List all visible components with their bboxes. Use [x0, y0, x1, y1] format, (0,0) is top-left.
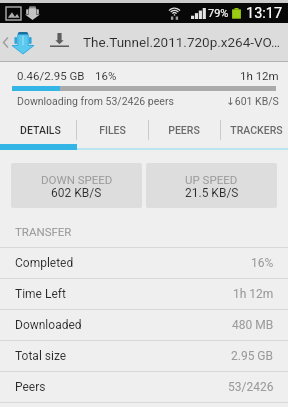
staticText: UP SPEED [185, 173, 238, 186]
button[interactable]: Navigate up [0, 23, 36, 61]
button[interactable]: DOWN SPEED [11, 163, 142, 208]
button[interactable]: Total size [0, 341, 288, 371]
staticText: TRACKERS [230, 124, 283, 136]
staticText: Time Left [15, 287, 66, 301]
button[interactable]: Time Left [0, 279, 288, 309]
staticText: DOWN SPEED [41, 173, 113, 186]
button[interactable]: FILES [76, 115, 148, 150]
staticText: 53/2426 [228, 380, 274, 394]
staticText: 13:17 [246, 5, 283, 22]
staticText: 21.5 KB/S [185, 186, 239, 200]
staticText: 79% [208, 7, 229, 20]
staticText: 602 KB/S [51, 186, 102, 200]
staticText: 16% [95, 69, 117, 82]
staticText: TRANSFER [15, 225, 72, 238]
staticText: Peers [15, 380, 46, 394]
staticText: ↓601 KB/S [226, 95, 279, 107]
button[interactable]: Peers [0, 372, 288, 402]
staticText: Downloading from 53/2426 peers [17, 95, 174, 107]
staticText: FILES [99, 124, 126, 136]
button[interactable]: Download [45, 23, 73, 61]
staticText: The.Tunnel.2011.720p.x264-VO… [83, 34, 281, 50]
staticText: 2.95 GB [231, 349, 274, 363]
staticText: 0.46/2.95 GB [17, 69, 85, 82]
button[interactable]: UP SPEED [146, 163, 277, 208]
staticText: Total size [15, 349, 67, 363]
button[interactable]: DETAILS [4, 115, 76, 150]
staticText: 16% [251, 256, 274, 270]
staticText: Completed [15, 256, 74, 270]
staticText: Downloaded [15, 318, 82, 332]
button[interactable]: Completed [0, 248, 288, 278]
staticText: 1h 12m [233, 287, 274, 301]
button[interactable]: PEERS [148, 115, 220, 150]
staticText: 1h 12m [240, 69, 279, 82]
staticText: PEERS [168, 124, 200, 136]
staticText: 480 MB [232, 318, 274, 332]
staticText: DETAILS [20, 124, 61, 136]
button[interactable]: Downloaded [0, 310, 288, 340]
button[interactable]: TRACKERS [220, 115, 288, 150]
